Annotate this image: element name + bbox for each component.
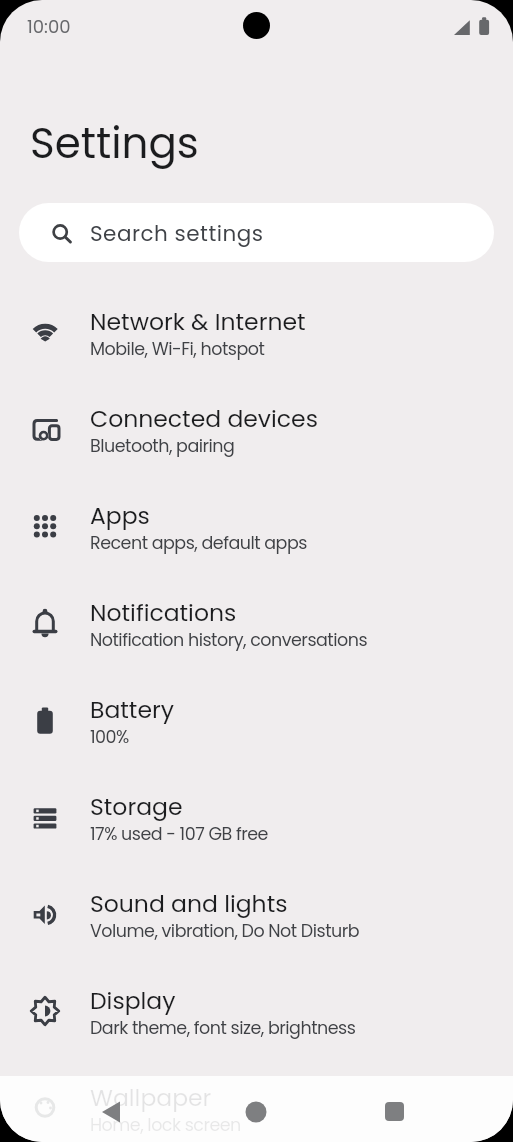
button[interactable]: Connected devices (0, 381, 513, 478)
staticText: Recent apps, default apps (90, 531, 307, 556)
staticText: Battery (90, 693, 174, 726)
staticText: Bluetooth, pairing (90, 434, 235, 459)
button[interactable]: Search settings (19, 203, 494, 262)
staticText: Wallpaper (90, 1081, 212, 1114)
staticText: Connected devices (90, 402, 318, 435)
button[interactable]: Battery (0, 672, 513, 769)
staticText: Home, lock screen (90, 1113, 241, 1138)
staticText: Storage (90, 790, 183, 823)
staticText: 17% used - 107 GB free (90, 822, 268, 847)
button[interactable]: Apps (0, 478, 513, 575)
staticText: Display (90, 984, 176, 1017)
staticText: Notification history, conversations (90, 628, 368, 653)
staticText: Notifications (90, 596, 237, 629)
staticText: 10:00 (27, 14, 71, 39)
button[interactable] (237, 1094, 275, 1132)
staticText: Network & Internet (90, 305, 306, 338)
button[interactable]: Notifications (0, 575, 513, 672)
staticText: Apps (90, 499, 150, 532)
button[interactable]: Sound and lights (0, 866, 513, 963)
staticText: 100% (90, 725, 129, 750)
button[interactable]: Wallpaper (0, 1060, 513, 1142)
staticText: Volume, vibration, Do Not Disturb (90, 919, 360, 944)
staticText: Mobile, Wi-Fi, hotspot (90, 337, 265, 362)
button[interactable]: Display (0, 963, 513, 1060)
button[interactable]: Storage (0, 769, 513, 866)
staticText: Settings (30, 114, 199, 173)
button[interactable]: Network & Internet (0, 284, 513, 381)
staticText: Sound and lights (90, 887, 288, 920)
button[interactable] (375, 1094, 413, 1132)
staticText: Search settings (90, 218, 264, 248)
staticText: Dark theme, font size, brightness (90, 1016, 356, 1041)
button[interactable] (92, 1094, 130, 1132)
